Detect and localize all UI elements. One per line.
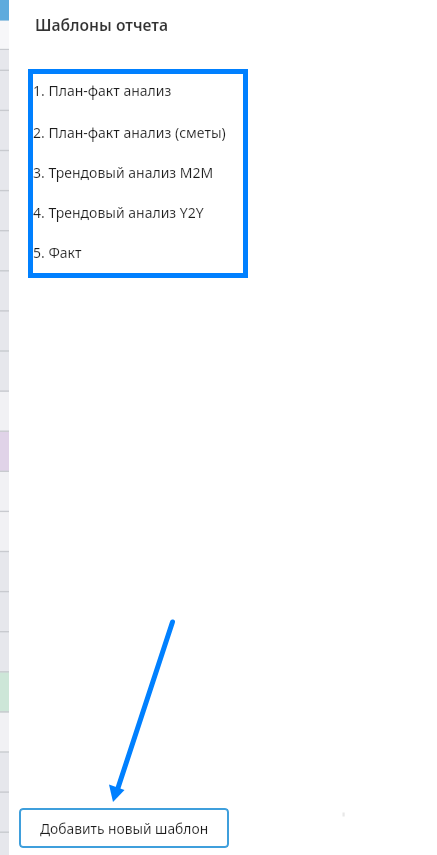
staticText: 5. Факт: [33, 243, 82, 262]
button[interactable]: 1. План-факт анализ: [28, 69, 248, 112]
staticText: 4. Трендовый анализ Y2Y: [33, 203, 204, 222]
button[interactable]: 5. Факт: [28, 232, 248, 272]
staticText: Шаблоны отчета: [35, 14, 169, 35]
button[interactable]: Добавить новый шаблон: [19, 808, 229, 848]
button[interactable]: 4. Трендовый анализ Y2Y: [28, 192, 248, 232]
staticText: Добавить новый шаблон: [40, 819, 209, 838]
button[interactable]: 3. Трендовый анализ M2M: [28, 152, 248, 192]
staticText: 1. План-факт анализ: [33, 81, 172, 100]
staticText: 2. План-факт анализ (сметы): [33, 123, 226, 142]
staticText: 3. Трендовый анализ M2M: [33, 163, 214, 182]
button[interactable]: 2. План-факт анализ (сметы): [28, 112, 248, 152]
